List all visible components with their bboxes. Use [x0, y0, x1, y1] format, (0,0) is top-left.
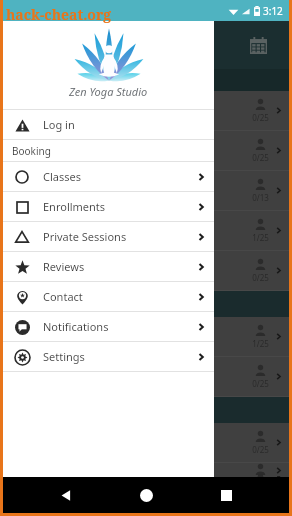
staticText: 1/25 — [252, 232, 269, 243]
button[interactable]: 1/25 — [3, 317, 289, 357]
button[interactable]: 5/13 — [3, 463, 289, 477]
staticText: 0/25 — [252, 444, 269, 455]
staticText: 0/13 — [252, 192, 269, 203]
button[interactable]: 0/25 — [3, 91, 289, 131]
button[interactable]: Classes — [3, 162, 214, 191]
staticText: Private Sessions — [43, 229, 127, 244]
button[interactable]: Back — [49, 478, 83, 512]
staticText: Notifications — [43, 319, 109, 334]
staticText: 0/25 — [252, 378, 269, 389]
button[interactable]: Enrollments — [3, 192, 214, 221]
staticText: Classes — [43, 169, 81, 184]
button[interactable]: 0/25 — [3, 357, 289, 397]
button[interactable]: Log in — [3, 110, 214, 139]
button[interactable]: 1/25 — [3, 211, 289, 251]
staticText: Contact — [43, 289, 83, 304]
button[interactable]: 0/13 — [3, 171, 289, 211]
staticText: Log in — [43, 117, 75, 132]
staticText: hack-cheat.org — [6, 5, 112, 24]
staticText: 3:12 — [263, 4, 283, 18]
button[interactable]: 0/25 — [3, 251, 289, 291]
button[interactable]: Contact — [3, 282, 214, 311]
button[interactable]: Reviews — [3, 252, 214, 281]
button[interactable]: Notifications — [3, 312, 214, 341]
button[interactable]: Home — [129, 478, 163, 512]
staticText: 0/25 — [252, 152, 269, 163]
staticText: 1/25 — [252, 338, 269, 349]
staticText: Settings — [43, 349, 85, 364]
staticText: Reviews — [43, 259, 85, 274]
button[interactable]: 0/25 — [3, 131, 289, 171]
staticText: 0/25 — [252, 272, 269, 283]
staticText: Zen Yoga Studio — [69, 84, 148, 99]
staticText: 0/25 — [252, 112, 269, 123]
button[interactable]: 0/25 — [3, 423, 289, 463]
staticText: Booking — [12, 144, 51, 158]
button[interactable]: Settings — [3, 342, 214, 371]
button[interactable]: Private Sessions — [3, 222, 214, 251]
staticText: Enrollments — [43, 199, 106, 214]
button[interactable]: Recent apps — [209, 478, 243, 512]
button[interactable]: Calendar — [245, 32, 271, 58]
